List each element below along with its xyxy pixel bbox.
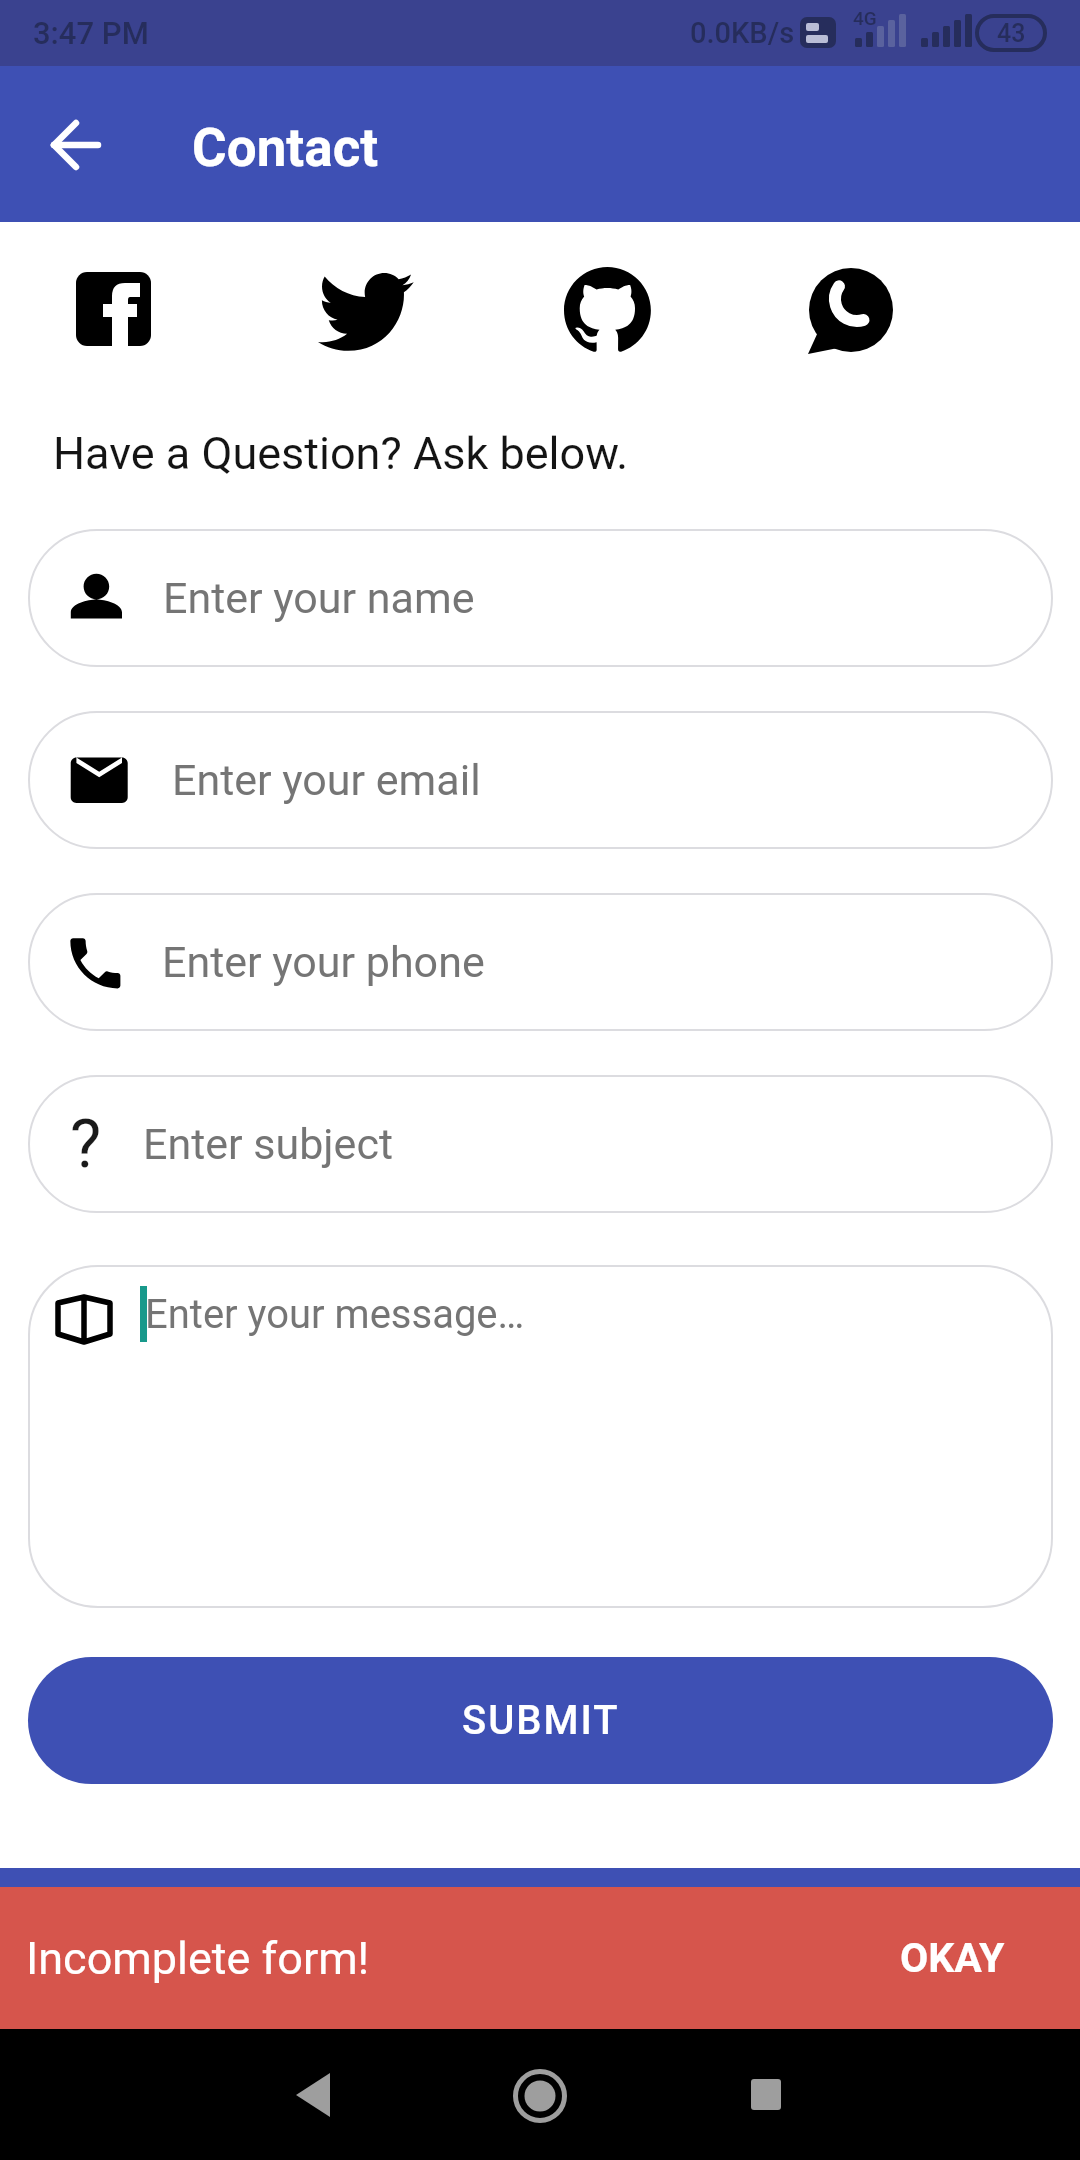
staticText: 4G xyxy=(853,7,877,29)
staticText: Contact xyxy=(192,117,379,179)
staticText: Have a Question? Ask below. xyxy=(53,427,629,480)
staticText: SUBMIT xyxy=(462,1697,620,1744)
staticText: Enter your email xyxy=(172,755,481,805)
staticText: Enter your message… xyxy=(145,1291,525,1338)
staticText: Enter your name xyxy=(163,573,475,623)
staticText: ? xyxy=(70,1106,102,1183)
staticText: Enter subject xyxy=(143,1119,394,1169)
staticText: Incomplete form! xyxy=(26,1932,370,1985)
staticText: 43 xyxy=(997,19,1026,48)
staticText: 0.0KB/s xyxy=(690,16,795,50)
staticText: 3:47 PM xyxy=(33,15,149,51)
staticText: OKAY xyxy=(900,1934,1005,1982)
staticText: Enter your phone xyxy=(162,937,485,987)
